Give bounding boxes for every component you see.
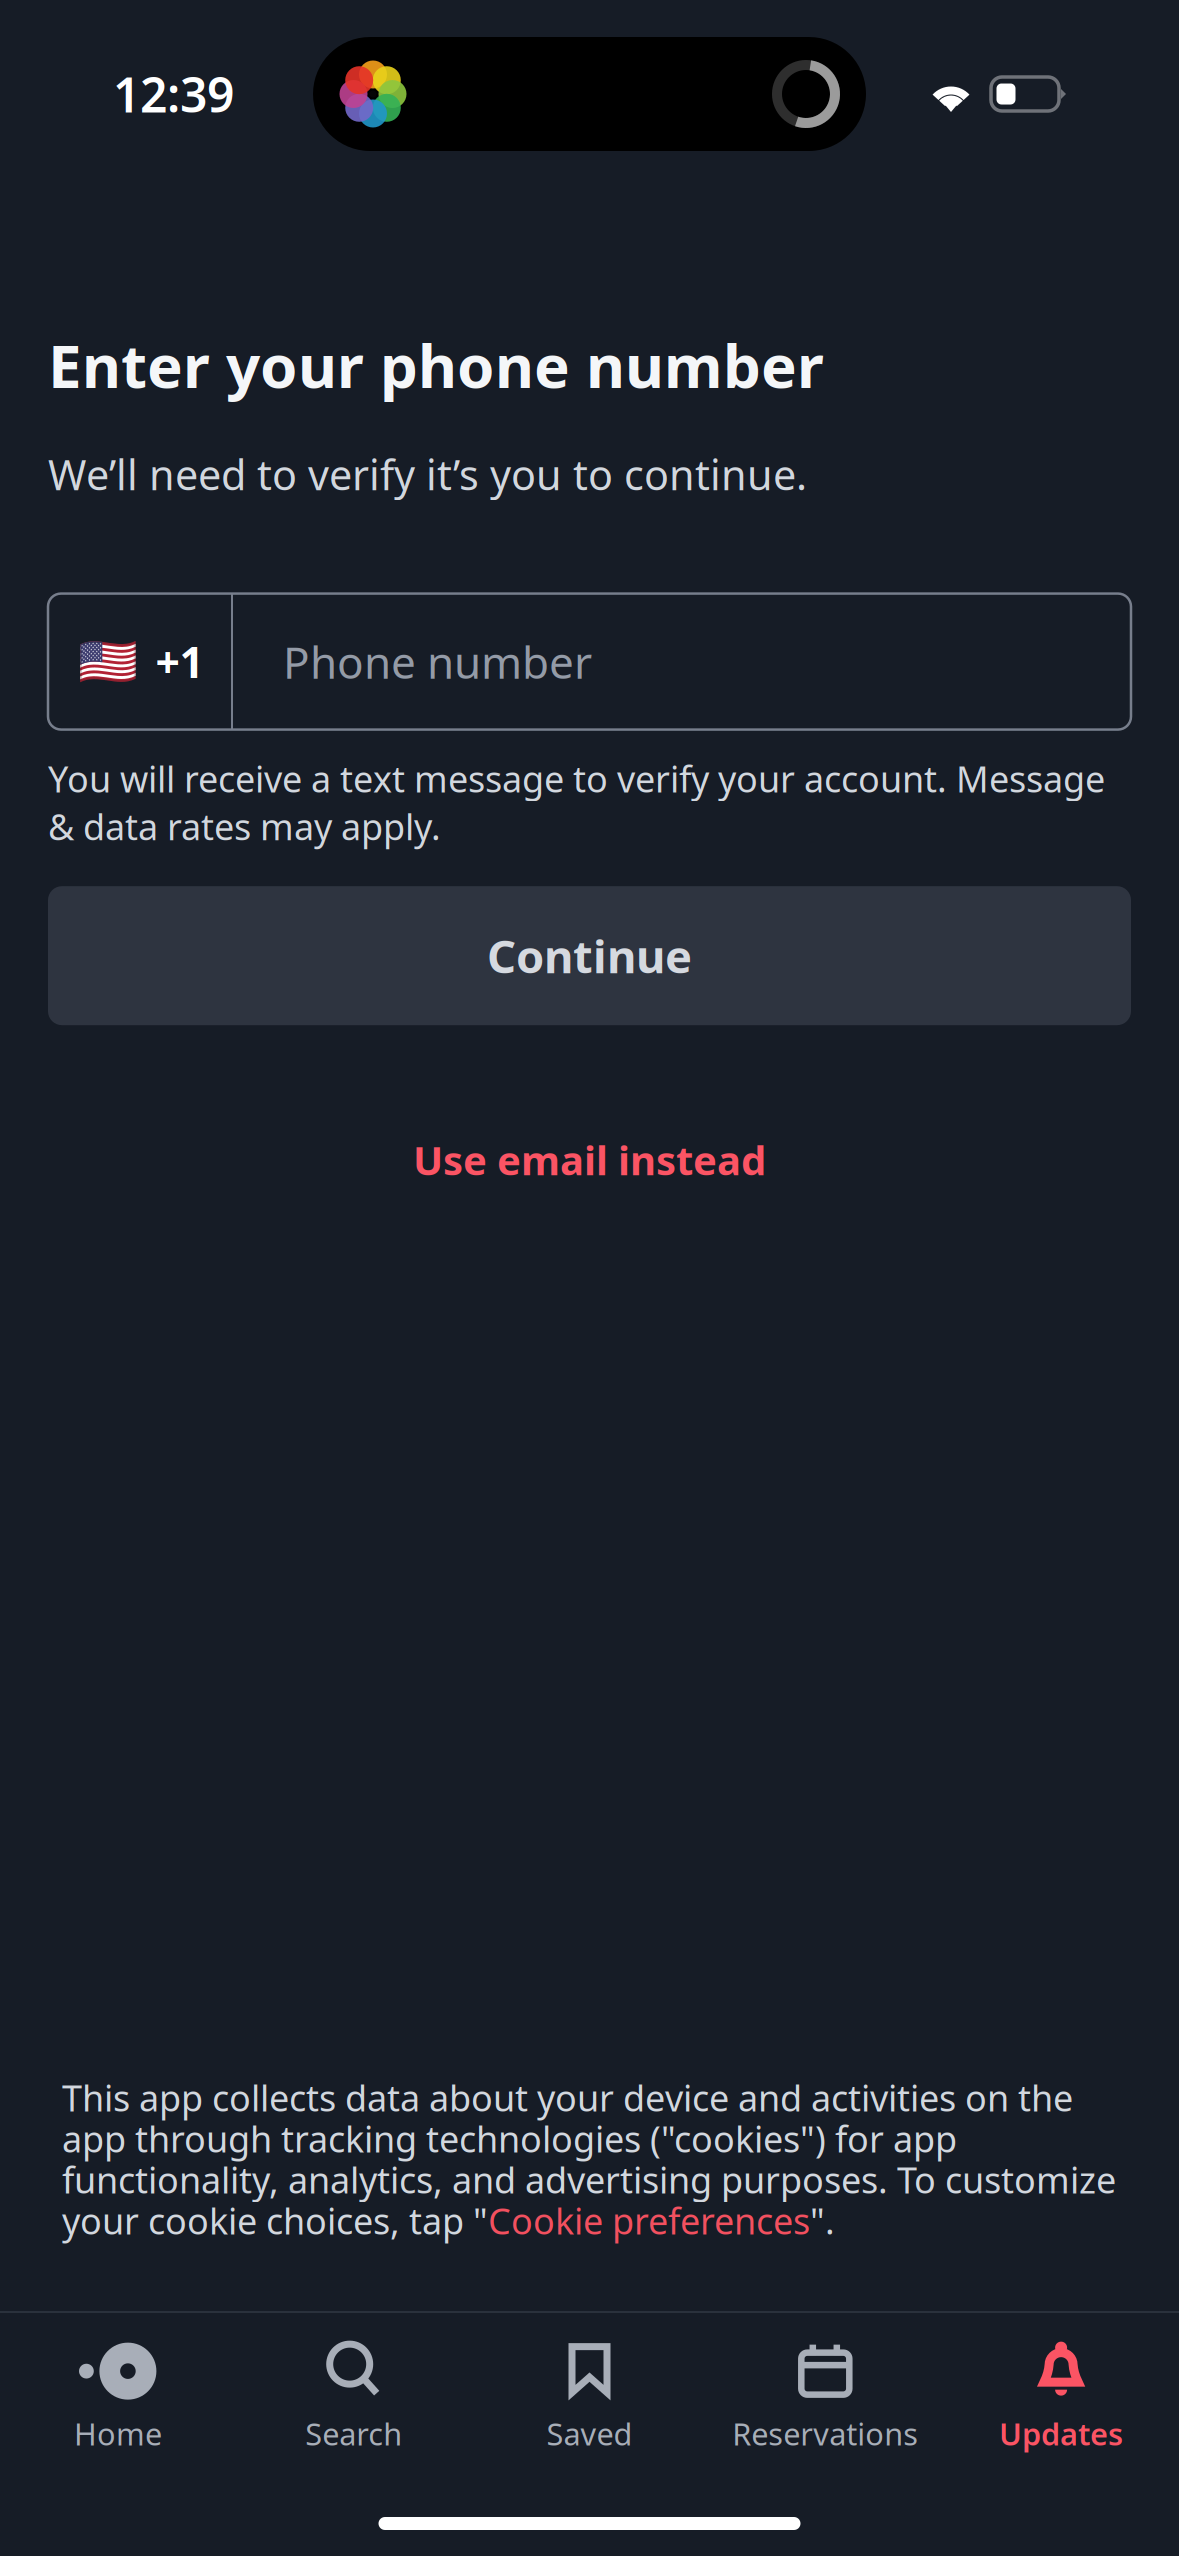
- button[interactable]: Home: [0, 2317, 236, 2461]
- staticText: 12:39: [113, 62, 234, 126]
- staticText: Saved: [546, 2413, 632, 2454]
- staticText: Home: [74, 2413, 162, 2454]
- staticText: Phone number: [283, 632, 592, 691]
- staticText: This app collects data about your device…: [62, 2074, 1073, 2121]
- staticText: Search: [305, 2413, 402, 2454]
- staticText: your cookie choices, tap ": [62, 2197, 488, 2244]
- staticText: ".: [810, 2197, 835, 2244]
- button[interactable]: Use email instead: [48, 1111, 1131, 1208]
- staticText: +1: [155, 633, 203, 690]
- staticText: 🇺🇸: [77, 634, 137, 689]
- staticText: Updates: [999, 2413, 1123, 2454]
- staticText: Cookie preferences: [488, 2197, 810, 2244]
- button[interactable]: Country code, United States, plus 1: [48, 594, 233, 730]
- button[interactable]: Reservations: [707, 2317, 943, 2461]
- staticText: Use email instead: [413, 1133, 766, 1186]
- button[interactable]: Search: [236, 2317, 472, 2461]
- staticText: functionality, analytics, and advertisin…: [62, 2156, 1116, 2203]
- staticText: We’ll need to verify it’s you to continu…: [48, 447, 807, 502]
- staticText: Reservations: [732, 2413, 918, 2454]
- button[interactable]: Saved: [472, 2317, 707, 2461]
- button[interactable]: Continue: [48, 886, 1131, 1025]
- button[interactable]: Cookie preferences: [488, 2197, 810, 2244]
- staticText: Enter your phone number: [48, 325, 824, 405]
- button[interactable]: Updates: [943, 2317, 1179, 2461]
- staticText: Continue: [487, 926, 692, 986]
- staticText: app through tracking technologies ("cook…: [62, 2115, 957, 2162]
- staticText: You will receive a text message to verif…: [48, 755, 1105, 850]
